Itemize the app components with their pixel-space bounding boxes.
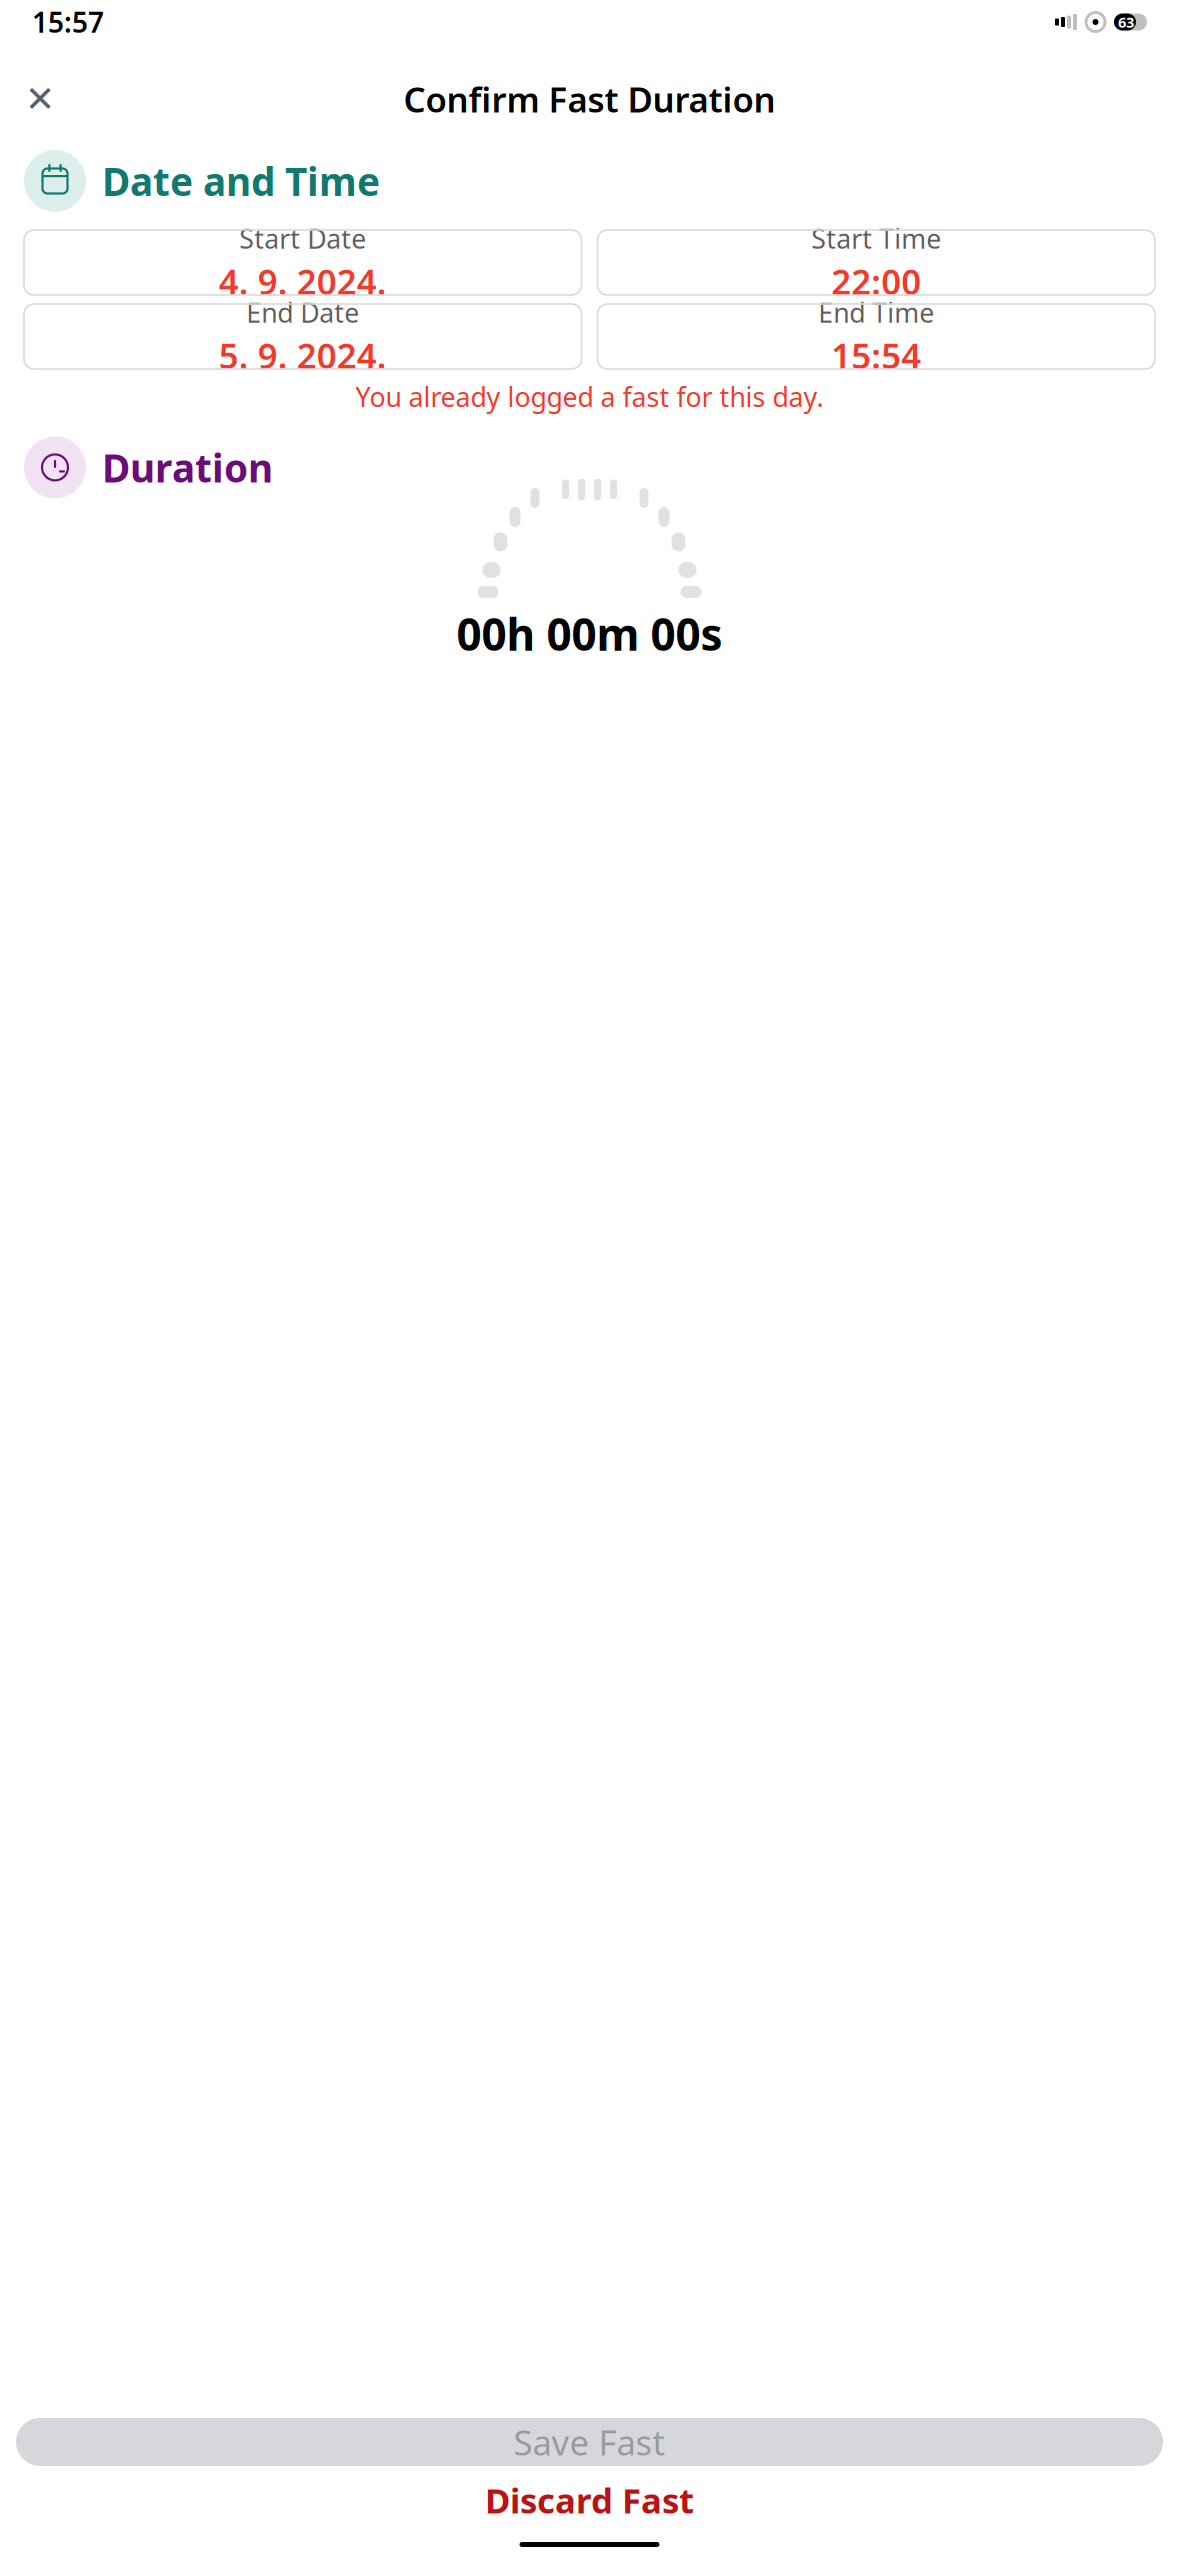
staticText: 15:54 <box>831 332 921 378</box>
button[interactable]: Start Time <box>597 230 1155 295</box>
staticText: 00h 00m 00s <box>456 604 722 663</box>
staticText: Date and Time <box>102 155 380 207</box>
staticText: ✕ <box>25 79 55 119</box>
staticText: You already logged a fast for this day. <box>355 379 823 414</box>
staticText: Duration <box>102 442 273 493</box>
button[interactable]: End Time <box>597 304 1155 369</box>
staticText: Confirm Fast Duration <box>403 76 775 122</box>
staticText: Save Fast <box>513 2419 665 2465</box>
button[interactable]: Start Date <box>24 230 581 295</box>
staticText: Start Time <box>811 221 941 256</box>
staticText: End Date <box>246 295 359 330</box>
staticText: 5. 9. 2024. <box>219 332 387 378</box>
staticText: End Time <box>818 295 934 330</box>
button[interactable]: Close <box>16 75 64 123</box>
staticText: 15:57 <box>32 3 104 41</box>
button[interactable]: Save Fast <box>16 2418 1163 2466</box>
staticText: Discard Fast <box>485 2477 694 2523</box>
staticText: 4. 9. 2024. <box>219 258 387 304</box>
staticText: 22:00 <box>831 258 921 304</box>
staticText: Start Date <box>239 221 366 256</box>
button[interactable]: End Date <box>24 304 581 369</box>
button[interactable]: Discard Fast <box>16 2474 1163 2526</box>
staticText: 63 <box>1118 12 1134 32</box>
